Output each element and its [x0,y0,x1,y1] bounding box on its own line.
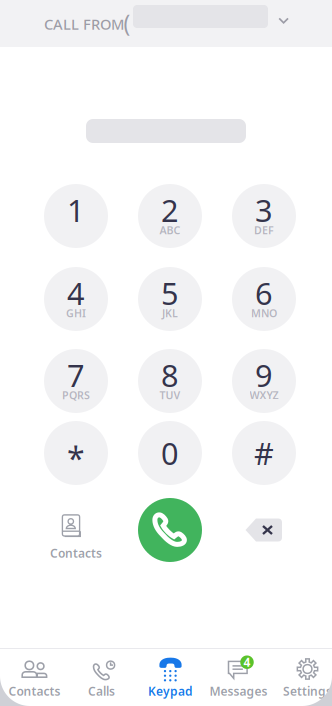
staticText: 5 [161,273,179,313]
staticText: ABC [159,223,180,237]
button[interactable]: * [44,421,108,485]
staticText: 9 [255,355,273,395]
button[interactable]: Settings [273,649,332,706]
staticText: CALL FROM [44,14,124,34]
staticText: ( [123,8,130,38]
button[interactable]: 1 [44,184,108,248]
staticText: 8 [161,355,179,395]
button[interactable]: 3 [232,184,296,248]
button[interactable]: 4 [204,649,272,706]
staticText: 7 [67,355,85,395]
button[interactable]: Delete [232,498,296,562]
staticText: 6 [255,273,273,313]
button[interactable]: 4 [44,267,108,331]
staticText: 4 [67,273,85,313]
staticText: Keypad [148,683,193,699]
staticText: Calls [88,683,115,699]
button[interactable]: Contacts [40,498,112,562]
button[interactable]: 8 [138,349,202,413]
staticText: Contacts [50,545,102,561]
button[interactable]: 5 [138,267,202,331]
button[interactable]: 0 [138,421,202,485]
staticText: GHI [66,306,86,320]
staticText: Contacts [8,683,60,699]
staticText: PQRS [62,388,90,402]
staticText: 1 [67,190,85,230]
staticText: Messages [209,683,267,699]
button[interactable]: Call [138,498,202,562]
button[interactable]: 7 [44,349,108,413]
staticText: 2 [161,190,179,230]
button[interactable]: Keypad [136,649,204,706]
button[interactable]: 9 [232,349,296,413]
staticText: 4 [243,654,250,670]
staticText: Settings [283,683,332,699]
button[interactable]: 2 [138,184,202,248]
staticText: * [67,437,85,479]
button[interactable]: CALL FROM [0,0,332,47]
staticText: JKL [162,306,178,320]
button[interactable]: 6 [232,267,296,331]
staticText: 3 [255,190,273,230]
staticText: MNO [251,306,277,320]
button[interactable]: # [232,421,296,485]
staticText: WXYZ [249,388,278,402]
staticText: DEF [254,223,274,237]
staticText: 0 [161,433,179,473]
staticText: # [254,433,274,473]
button[interactable]: Contacts [0,649,68,706]
button[interactable]: Calls [67,649,135,706]
staticText: TUV [159,388,180,402]
